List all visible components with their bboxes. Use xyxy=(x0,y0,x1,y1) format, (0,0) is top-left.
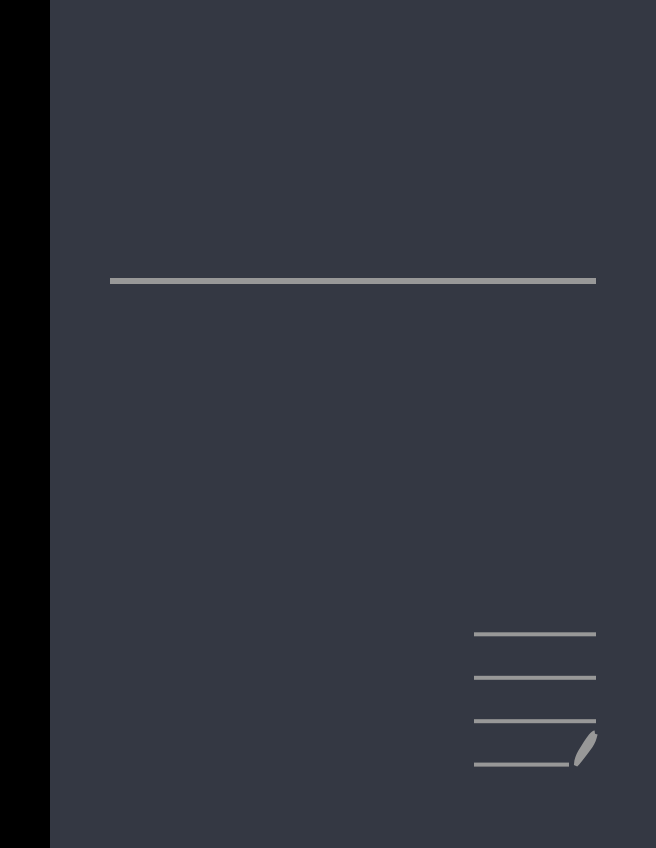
button[interactable]: Sign document xyxy=(474,628,597,768)
